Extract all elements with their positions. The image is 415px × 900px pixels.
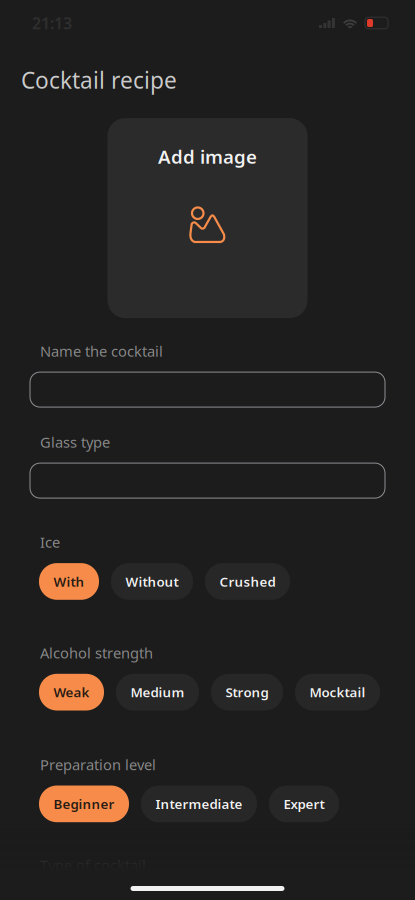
staticText: With	[53, 573, 84, 590]
button[interactable]: Mocktail	[295, 674, 380, 710]
button[interactable]: Add image	[107, 118, 307, 318]
staticText: Ice	[40, 532, 60, 552]
button[interactable]: Strong	[211, 674, 283, 710]
staticText: Name the cocktail	[40, 341, 163, 361]
staticText: Without	[125, 573, 178, 590]
staticText: Glass type	[40, 432, 110, 452]
staticText: 21:13	[32, 12, 72, 34]
staticText: Beginner	[53, 795, 114, 813]
button[interactable]: Intermediate	[141, 785, 257, 822]
button[interactable]: Weak	[39, 674, 104, 710]
staticText: Alcohol strength	[40, 643, 153, 663]
staticText: Weak	[53, 683, 89, 701]
staticText: Strong	[225, 683, 268, 701]
button[interactable]: Expert	[269, 785, 339, 822]
staticText: Expert	[283, 795, 324, 813]
button[interactable]: Without	[111, 563, 193, 600]
staticText: Mocktail	[309, 683, 365, 701]
staticText: Intermediate	[155, 795, 242, 813]
staticText: Cocktail recipe	[21, 65, 177, 95]
staticText: Preparation level	[40, 755, 156, 774]
button[interactable]: With	[39, 563, 99, 600]
staticText: Add image	[158, 144, 257, 169]
staticText: Medium	[130, 683, 184, 701]
staticText: Crushed	[219, 573, 275, 590]
button[interactable]: Beginner	[39, 785, 129, 822]
button[interactable]: Crushed	[205, 563, 290, 600]
button[interactable]: Medium	[116, 674, 199, 710]
